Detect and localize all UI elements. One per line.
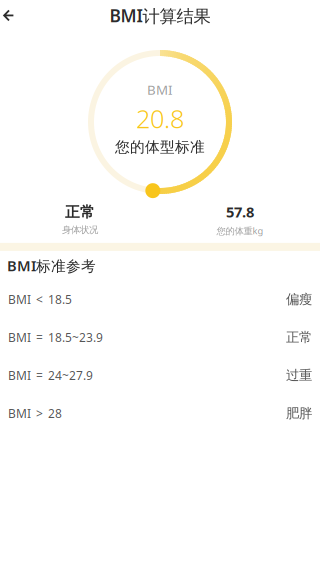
staticText: 您的体型标准 — [115, 138, 205, 156]
staticText: 57.8 — [226, 202, 254, 221]
staticText: BMI = 24~27.9 — [8, 367, 93, 383]
staticText: 身体状况 — [62, 224, 98, 236]
button[interactable]: Back — [0, 3, 26, 28]
staticText: 肥胖 — [286, 405, 312, 422]
staticText: BMI标准参考 — [7, 256, 96, 275]
staticText: 20.8 — [136, 101, 184, 135]
staticText: BMI — [147, 81, 173, 98]
staticText: 您的体重kg — [216, 224, 263, 237]
staticText: 偏瘦 — [286, 291, 312, 308]
staticText: BMI计算结果 — [109, 4, 210, 27]
staticText: 过重 — [286, 367, 312, 384]
staticText: BMI < 18.5 — [8, 291, 72, 307]
staticText: 正常 — [286, 329, 312, 346]
staticText: 正常 — [65, 203, 95, 221]
staticText: BMI > 28 — [8, 405, 62, 421]
staticText: BMI = 18.5~23.9 — [8, 329, 103, 345]
